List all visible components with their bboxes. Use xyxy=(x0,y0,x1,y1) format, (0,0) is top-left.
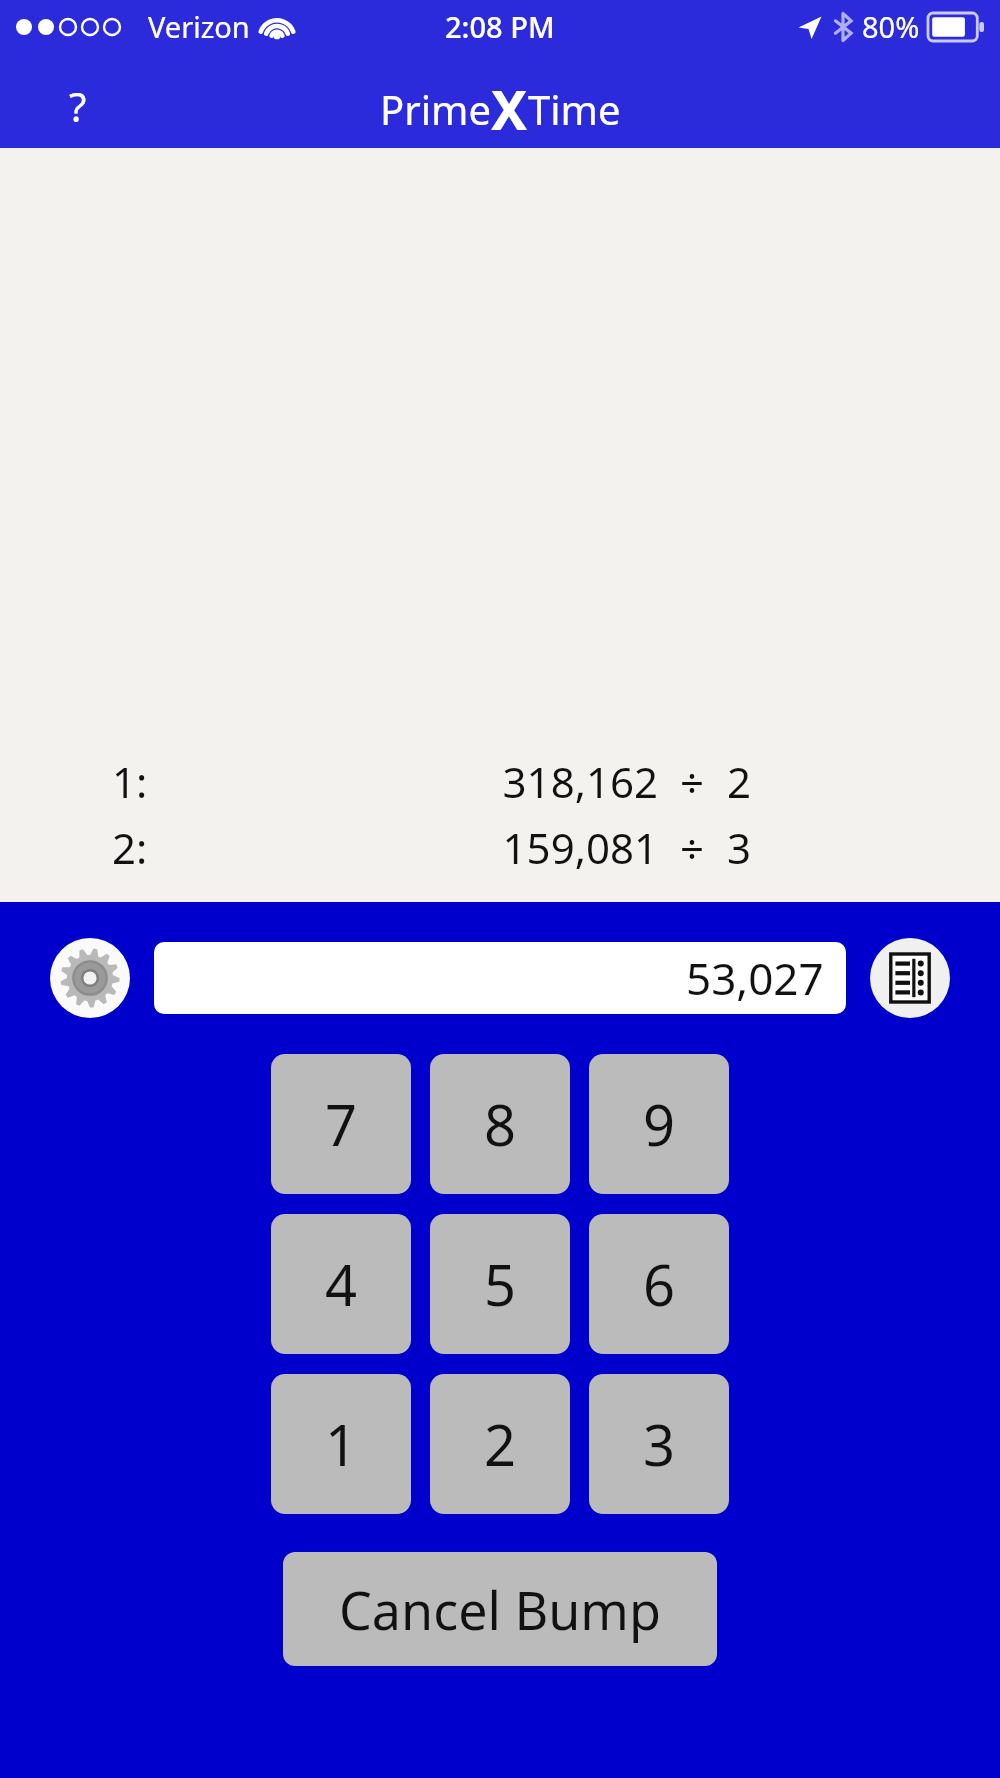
button[interactable]: 1 xyxy=(271,1374,411,1514)
staticText: 2:08 PM xyxy=(445,7,555,46)
button[interactable]: 5 xyxy=(430,1214,570,1354)
button[interactable]: 6 xyxy=(589,1214,729,1354)
staticText: 7 xyxy=(325,1086,358,1162)
staticText: 159,081 xyxy=(502,819,658,876)
staticText: 4 xyxy=(325,1246,358,1322)
staticText: Cancel Bump xyxy=(339,1574,661,1645)
button[interactable]: 9 xyxy=(589,1054,729,1194)
staticText: X xyxy=(491,72,528,146)
button[interactable]: Help xyxy=(40,70,116,142)
staticText: 80% xyxy=(862,7,920,46)
button[interactable]: 8 xyxy=(430,1054,570,1194)
staticText: 2 xyxy=(727,753,752,810)
staticText: 2: xyxy=(112,819,148,876)
button[interactable]: 2: xyxy=(0,814,1000,880)
staticText: ? xyxy=(69,79,87,133)
staticText: Time xyxy=(528,82,621,136)
staticText: 8 xyxy=(484,1086,517,1162)
staticText: 318,162 xyxy=(502,753,658,810)
staticText: 3 xyxy=(727,819,752,876)
button[interactable]: 4 xyxy=(271,1214,411,1354)
staticText: Verizon xyxy=(148,7,250,46)
staticText: Prime xyxy=(380,82,491,136)
staticText: 1 xyxy=(325,1406,358,1482)
button[interactable]: Cancel Bump xyxy=(283,1552,717,1666)
button[interactable]: 2 xyxy=(430,1374,570,1514)
staticText: 9 xyxy=(643,1086,676,1162)
staticText: 53,027 xyxy=(686,948,824,1008)
staticText: 6 xyxy=(643,1246,676,1322)
button[interactable]: Report xyxy=(870,938,950,1018)
button[interactable]: 3 xyxy=(589,1374,729,1514)
staticText: 2 xyxy=(484,1406,517,1482)
staticText: ÷ xyxy=(680,819,705,876)
staticText: 3 xyxy=(643,1406,676,1482)
button[interactable]: 1: xyxy=(0,748,1000,814)
button[interactable]: Settings xyxy=(50,938,130,1018)
staticText: 1: xyxy=(112,753,148,810)
staticText: ÷ xyxy=(680,753,705,810)
button[interactable]: 53,027 xyxy=(154,942,846,1014)
button[interactable]: 7 xyxy=(271,1054,411,1194)
staticText: 5 xyxy=(484,1246,517,1322)
